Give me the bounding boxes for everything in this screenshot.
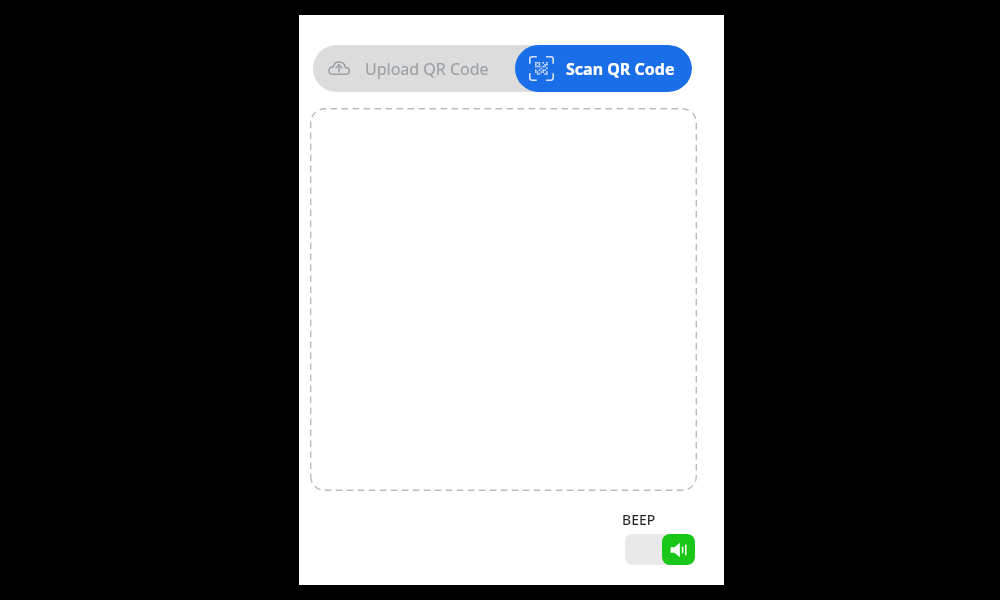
button[interactable]: Upload QR Code [313, 45, 515, 92]
button[interactable]: Scan QR Code [515, 45, 692, 92]
staticText: BEEP [622, 510, 656, 529]
staticText: Scan QR Code [566, 58, 675, 80]
staticText: Upload QR Code [365, 58, 489, 80]
button[interactable] [310, 108, 697, 491]
button[interactable]: Beep toggle, on [625, 534, 695, 565]
